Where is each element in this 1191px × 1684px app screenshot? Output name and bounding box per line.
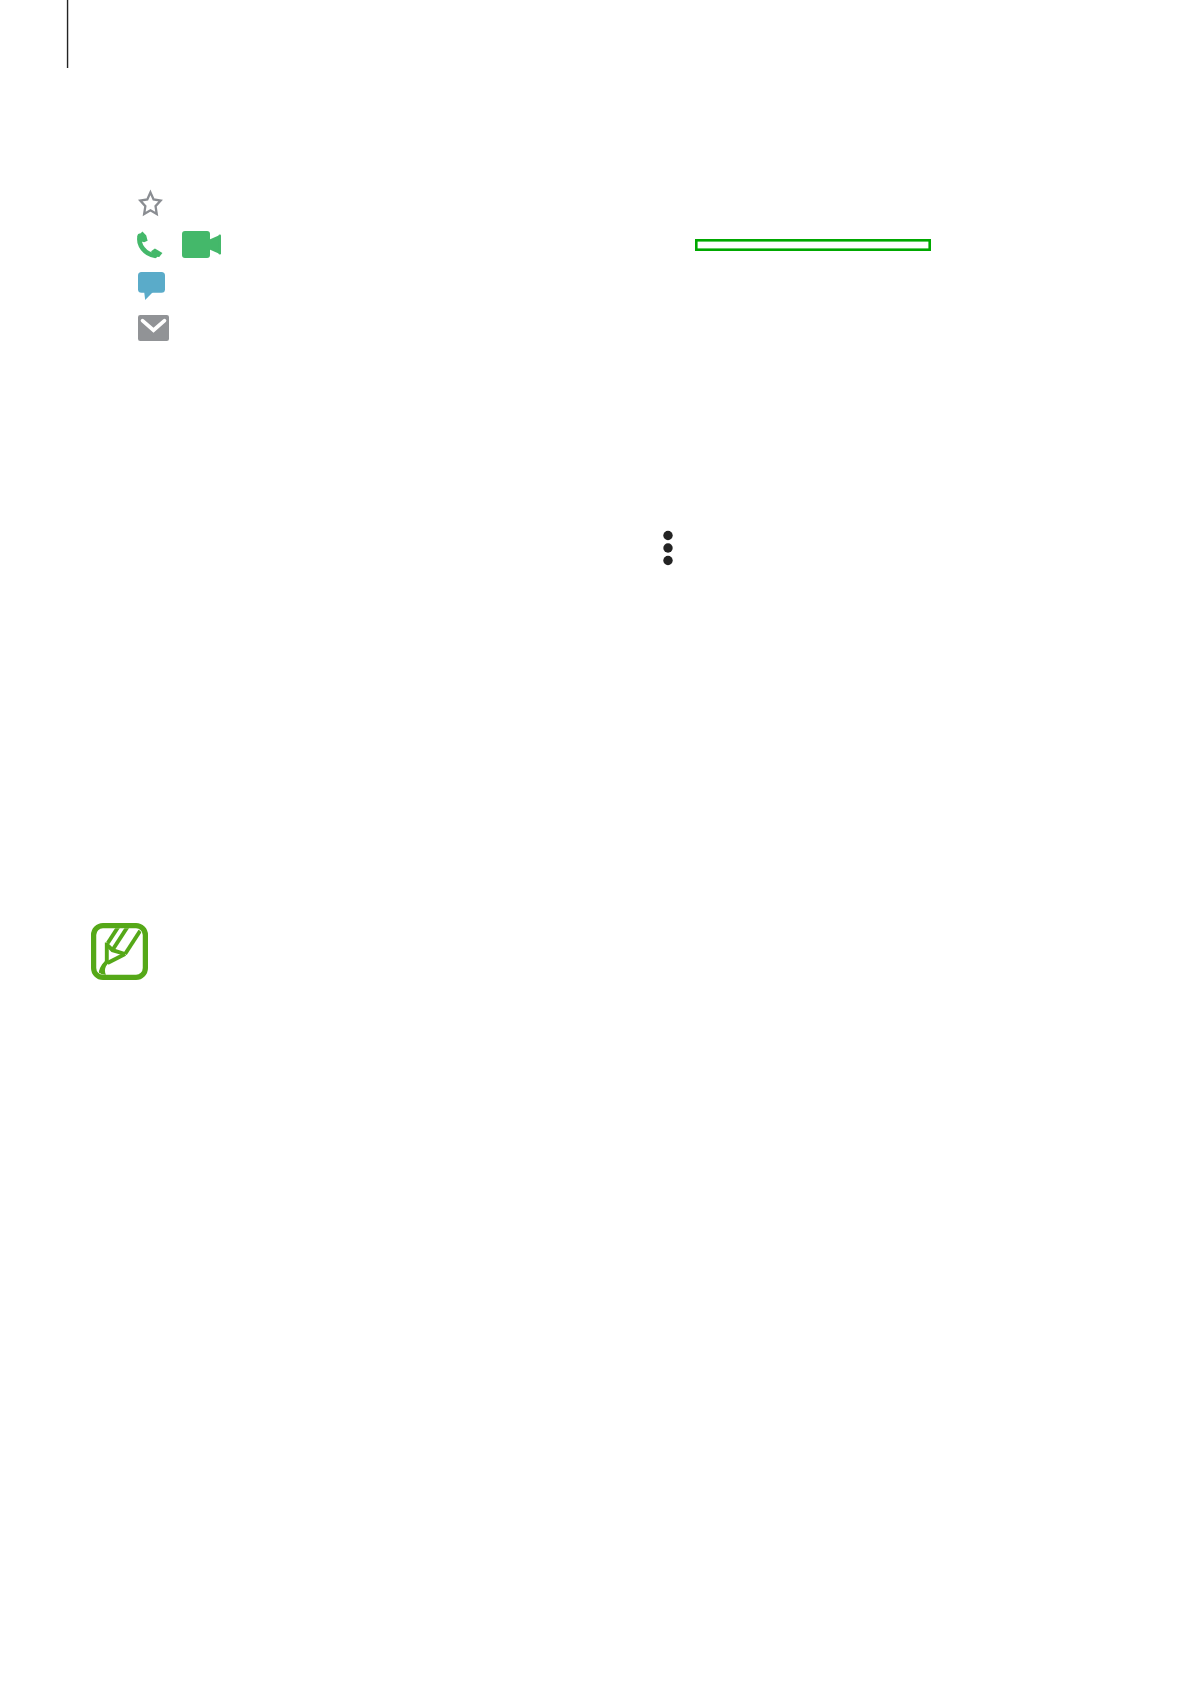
button[interactable]: More options <box>656 524 680 572</box>
button[interactable]: Call <box>136 230 163 258</box>
button[interactable]: Note <box>91 923 148 980</box>
button[interactable]: Message <box>138 272 165 300</box>
button[interactable]: Email <box>138 315 169 341</box>
button[interactable]: Favourite <box>137 187 163 217</box>
button[interactable]: Video call <box>182 231 221 258</box>
